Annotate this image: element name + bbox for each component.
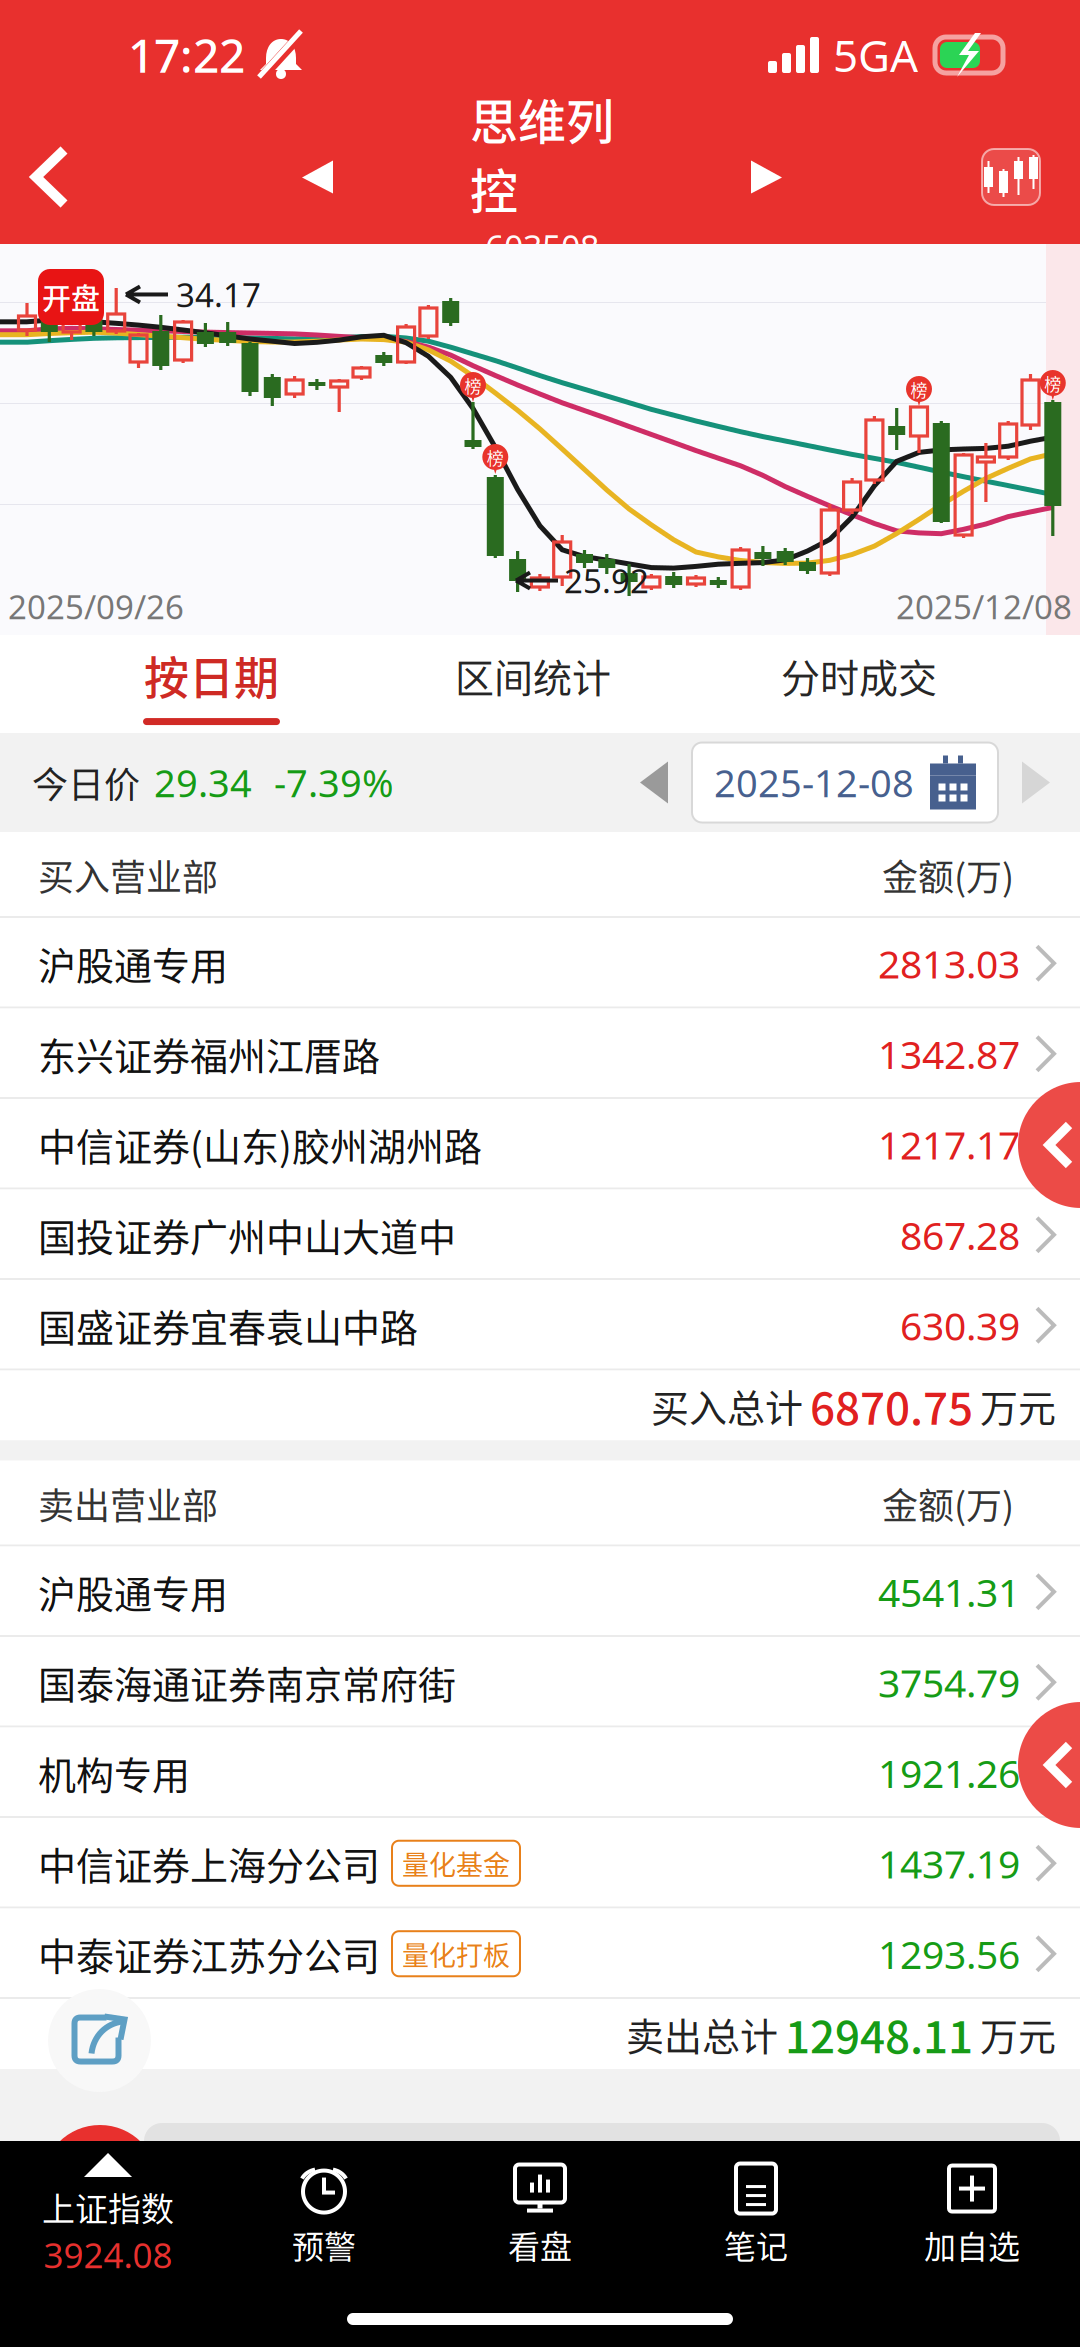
- staticText: 思维列控: [470, 84, 614, 223]
- staticText: 榜: [1044, 371, 1061, 396]
- staticText: 2025/09/26: [8, 584, 184, 629]
- staticText: 6870.75: [810, 1374, 973, 1437]
- staticText: 量化打板: [402, 1934, 510, 1973]
- staticText: 上证指数: [42, 2183, 174, 2231]
- button[interactable]: 上证指数: [0, 2153, 216, 2278]
- staticText: 沪股通专用: [38, 1564, 228, 1619]
- button[interactable]: Share: [48, 1989, 151, 2092]
- button[interactable]: 中信证券上海分公司: [0, 1818, 1080, 1908]
- staticText: 买入总计: [651, 1378, 803, 1433]
- staticText: 1217.17: [878, 1118, 1020, 1171]
- staticText: 金额(万): [882, 1477, 1014, 1529]
- staticText: 区间统计: [455, 647, 611, 704]
- staticText: 1921.26: [878, 1746, 1020, 1799]
- button[interactable]: 国投证券广州中山大道中: [0, 1189, 1080, 1280]
- staticText: 万元: [980, 1378, 1056, 1433]
- button[interactable]: 加自选: [864, 2164, 1080, 2268]
- button[interactable]: Previous page: [1018, 1082, 1080, 1208]
- button[interactable]: 预警: [216, 2164, 432, 2268]
- staticText: 2813.03: [878, 937, 1020, 990]
- staticText: 5GA: [833, 25, 918, 85]
- staticText: 1293.56: [878, 1927, 1020, 1980]
- staticText: 卖出营业部: [38, 1477, 218, 1529]
- staticText: 机构专用: [38, 1745, 190, 1800]
- button[interactable]: 按日期: [78, 629, 345, 739]
- staticText: -7.39%: [274, 757, 394, 808]
- button[interactable]: 沪股通专用: [0, 918, 1080, 1008]
- button[interactable]: 区间统计: [345, 633, 721, 735]
- staticText: 开盘: [42, 276, 100, 318]
- staticText: 笔记: [724, 2222, 788, 2268]
- button[interactable]: 机构专用: [0, 1727, 1080, 1818]
- staticText: 量化基金: [402, 1844, 510, 1883]
- staticText: 金额(万): [882, 849, 1014, 901]
- staticText: 4541.31: [878, 1565, 1020, 1618]
- staticText: 加自选: [924, 2222, 1020, 2268]
- staticText: 3754.79: [878, 1656, 1020, 1709]
- staticText: 预警: [292, 2222, 356, 2268]
- button[interactable]: 东兴证券福州江厝路: [0, 1008, 1080, 1099]
- staticText: 2025-12-08: [714, 757, 914, 808]
- staticText: 榜: [487, 445, 504, 470]
- staticText: 1437.19: [878, 1837, 1020, 1890]
- staticText: 17:22: [128, 24, 245, 86]
- staticText: 国盛证券宜春袁山中路: [38, 1298, 418, 1353]
- staticText: 国泰海通证券南京常府街: [38, 1655, 456, 1710]
- staticText: 榜: [910, 377, 927, 402]
- staticText: 34.17: [176, 272, 261, 317]
- button[interactable]: 国泰海通证券南京常府街: [0, 1637, 1080, 1727]
- button[interactable]: 中信证券(山东)胶州湖州路: [0, 1099, 1080, 1189]
- staticText: 2025/12/08: [896, 584, 1072, 629]
- staticText: 630.39: [900, 1299, 1020, 1352]
- button[interactable]: Next day: [998, 759, 1074, 805]
- button[interactable]: 国盛证券宜春袁山中路: [0, 1280, 1080, 1370]
- button[interactable]: Previous stock: [276, 118, 359, 235]
- staticText: 12948.11: [785, 2002, 973, 2066]
- staticText: 中信证券(山东)胶州湖州路: [38, 1117, 482, 1172]
- button[interactable]: K-line chart: [966, 131, 1080, 223]
- staticText: 1342.87: [878, 1027, 1020, 1080]
- staticText: 东兴证券福州江厝路: [38, 1026, 380, 1081]
- staticText: 买入营业部: [38, 849, 218, 901]
- staticText: 沪股通专用: [38, 936, 228, 991]
- button[interactable]: Previous page: [1018, 1702, 1080, 1828]
- staticText: 按日期: [144, 643, 279, 708]
- staticText: 国投证券广州中山大道中: [38, 1207, 456, 1262]
- button[interactable]: 笔记: [648, 2164, 864, 2268]
- staticText: 中泰证券江苏分公司: [38, 1926, 380, 1981]
- button[interactable]: Next stock: [725, 118, 808, 235]
- button[interactable]: 2025-12-08: [692, 742, 998, 822]
- button[interactable]: 沪股通专用: [0, 1546, 1080, 1637]
- staticText: 分时成交: [781, 647, 937, 704]
- staticText: 867.28: [900, 1208, 1020, 1261]
- staticText: 29.34: [154, 757, 252, 808]
- staticText: 中信证券上海分公司: [38, 1836, 380, 1891]
- button[interactable]: Previous day: [616, 759, 692, 805]
- staticText: 3924.08: [43, 2231, 172, 2278]
- staticText: 万元: [980, 2006, 1056, 2061]
- staticText: 看盘: [508, 2222, 572, 2268]
- staticText: 603508: [485, 224, 599, 270]
- button[interactable]: 看盘: [432, 2164, 648, 2268]
- staticText: 今日价: [32, 756, 140, 808]
- button[interactable]: Refresh: [42, 2125, 158, 2241]
- staticText: 榜: [464, 373, 481, 398]
- button[interactable]: Back: [0, 115, 100, 239]
- staticText: 卖出总计: [626, 2006, 778, 2061]
- staticText: 25.92: [564, 558, 649, 603]
- button[interactable]: 分时成交: [721, 633, 997, 735]
- button[interactable]: 中泰证券江苏分公司: [0, 1908, 1080, 1999]
